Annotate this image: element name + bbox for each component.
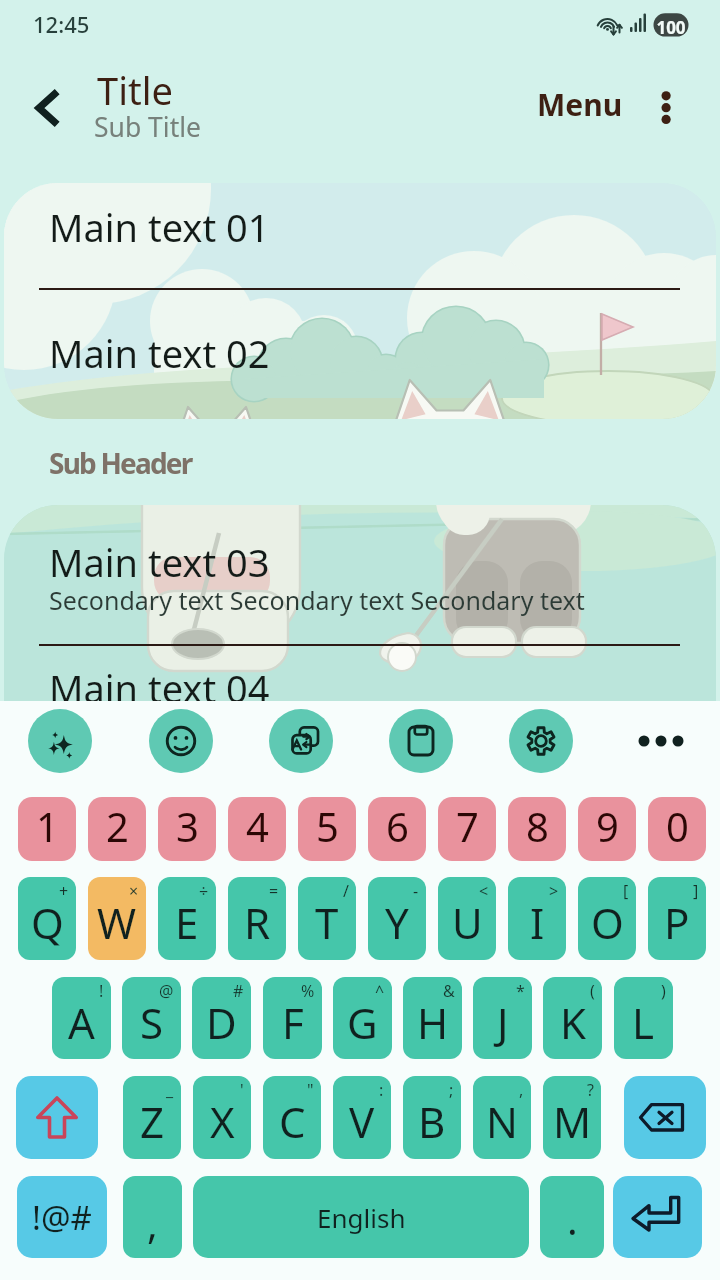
staticText: Y — [385, 894, 409, 951]
staticText: Title — [97, 64, 173, 116]
button[interactable]: C — [263, 1076, 321, 1159]
button[interactable]: 5 — [298, 797, 356, 861]
staticText: . — [567, 1192, 578, 1246]
staticText: P — [664, 894, 690, 951]
button[interactable]: Z — [123, 1076, 181, 1159]
staticText: : — [379, 1079, 384, 1101]
staticText: ) — [661, 980, 666, 1002]
button[interactable]: 6 — [368, 797, 426, 861]
staticText: G — [347, 994, 378, 1051]
button[interactable]: G — [333, 977, 392, 1059]
button[interactable]: Backspace — [624, 1076, 706, 1159]
button[interactable]: A — [52, 977, 111, 1059]
staticText: 12:45 — [33, 9, 90, 39]
button[interactable]: R — [228, 877, 286, 960]
button[interactable]: 4 — [228, 797, 286, 861]
staticText: T — [315, 894, 339, 951]
staticText: ] — [693, 880, 699, 902]
button[interactable]: 2 — [88, 797, 146, 861]
staticText: Z — [140, 1093, 165, 1150]
staticText: ' — [240, 1079, 244, 1101]
button[interactable]: 0 — [648, 797, 706, 861]
staticText: 6 — [386, 799, 409, 853]
button[interactable]: X — [193, 1076, 251, 1159]
button[interactable]: V — [333, 1076, 391, 1159]
button[interactable]: Shift — [16, 1076, 98, 1159]
staticText: / — [343, 880, 349, 902]
button[interactable]: I — [508, 877, 566, 960]
button[interactable]: 1 — [18, 797, 76, 861]
button[interactable]: B — [403, 1076, 461, 1159]
button[interactable]: O — [578, 877, 636, 960]
button[interactable]: Settings — [509, 709, 573, 773]
staticText: # — [233, 980, 244, 1002]
button[interactable]: Q — [18, 877, 76, 960]
button[interactable]: L — [614, 977, 673, 1059]
button[interactable]: English — [193, 1176, 529, 1258]
staticText: < — [479, 880, 489, 902]
staticText: & — [443, 980, 455, 1002]
staticText: 5 — [316, 799, 339, 853]
button[interactable]: W — [88, 877, 146, 960]
staticText: % — [301, 980, 315, 1002]
button[interactable]: 8 — [508, 797, 566, 861]
button[interactable]: Emoji — [149, 709, 213, 773]
button[interactable]: AI assist — [28, 709, 92, 773]
staticText: = — [269, 880, 279, 902]
staticText: !@# — [32, 1195, 92, 1240]
button[interactable]: , — [123, 1176, 182, 1258]
button[interactable]: . — [540, 1176, 604, 1258]
button[interactable]: Translate — [269, 709, 333, 773]
button[interactable]: 9 — [578, 797, 636, 861]
staticText: , — [519, 1079, 524, 1101]
staticText: V — [349, 1093, 375, 1150]
staticText: Main text 01 — [49, 201, 270, 253]
button[interactable]: F — [263, 977, 322, 1059]
button[interactable]: S — [122, 977, 181, 1059]
button[interactable]: E — [158, 877, 216, 960]
staticText: Q — [31, 894, 64, 951]
button[interactable]: M — [543, 1076, 601, 1159]
button[interactable]: T — [298, 877, 356, 960]
staticText: S — [140, 994, 164, 1051]
staticText: B — [418, 1093, 446, 1150]
staticText: 9 — [596, 799, 619, 853]
staticText: J — [497, 994, 509, 1051]
staticText: R — [244, 894, 271, 951]
staticText: C — [279, 1093, 306, 1150]
staticText: ( — [590, 980, 595, 1002]
button[interactable]: P — [648, 877, 706, 960]
staticText: ; — [449, 1079, 454, 1101]
button[interactable]: K — [543, 977, 602, 1059]
button[interactable]: Clipboard — [389, 709, 453, 773]
staticText: 1 — [36, 799, 59, 853]
button[interactable]: More — [629, 709, 693, 773]
staticText: + — [59, 880, 69, 902]
staticText: A — [68, 994, 95, 1051]
button[interactable]: D — [192, 977, 251, 1059]
button[interactable]: N — [473, 1076, 531, 1159]
button[interactable]: 7 — [438, 797, 496, 861]
staticText: _ — [166, 1079, 174, 1101]
staticText: K — [560, 994, 586, 1051]
button[interactable]: J — [473, 977, 532, 1059]
staticText: × — [129, 880, 139, 902]
staticText: ? — [587, 1079, 594, 1101]
staticText: O — [591, 894, 624, 951]
button[interactable]: Menu — [525, 78, 635, 131]
button[interactable]: 3 — [158, 797, 216, 861]
staticText: @ — [159, 980, 174, 1002]
button[interactable]: Y — [368, 877, 426, 960]
staticText: 0 — [666, 799, 689, 853]
staticText: M — [553, 1093, 592, 1150]
button[interactable]: More options — [644, 82, 688, 126]
button[interactable]: U — [438, 877, 496, 960]
button[interactable]: H — [403, 977, 462, 1059]
button[interactable]: !@# — [17, 1176, 107, 1258]
staticText: ! — [99, 980, 104, 1002]
button[interactable]: Back — [19, 80, 75, 136]
staticText: 2 — [106, 799, 129, 853]
staticText: Menu — [537, 84, 623, 125]
button[interactable]: Enter — [613, 1176, 702, 1258]
staticText: I — [530, 894, 545, 951]
